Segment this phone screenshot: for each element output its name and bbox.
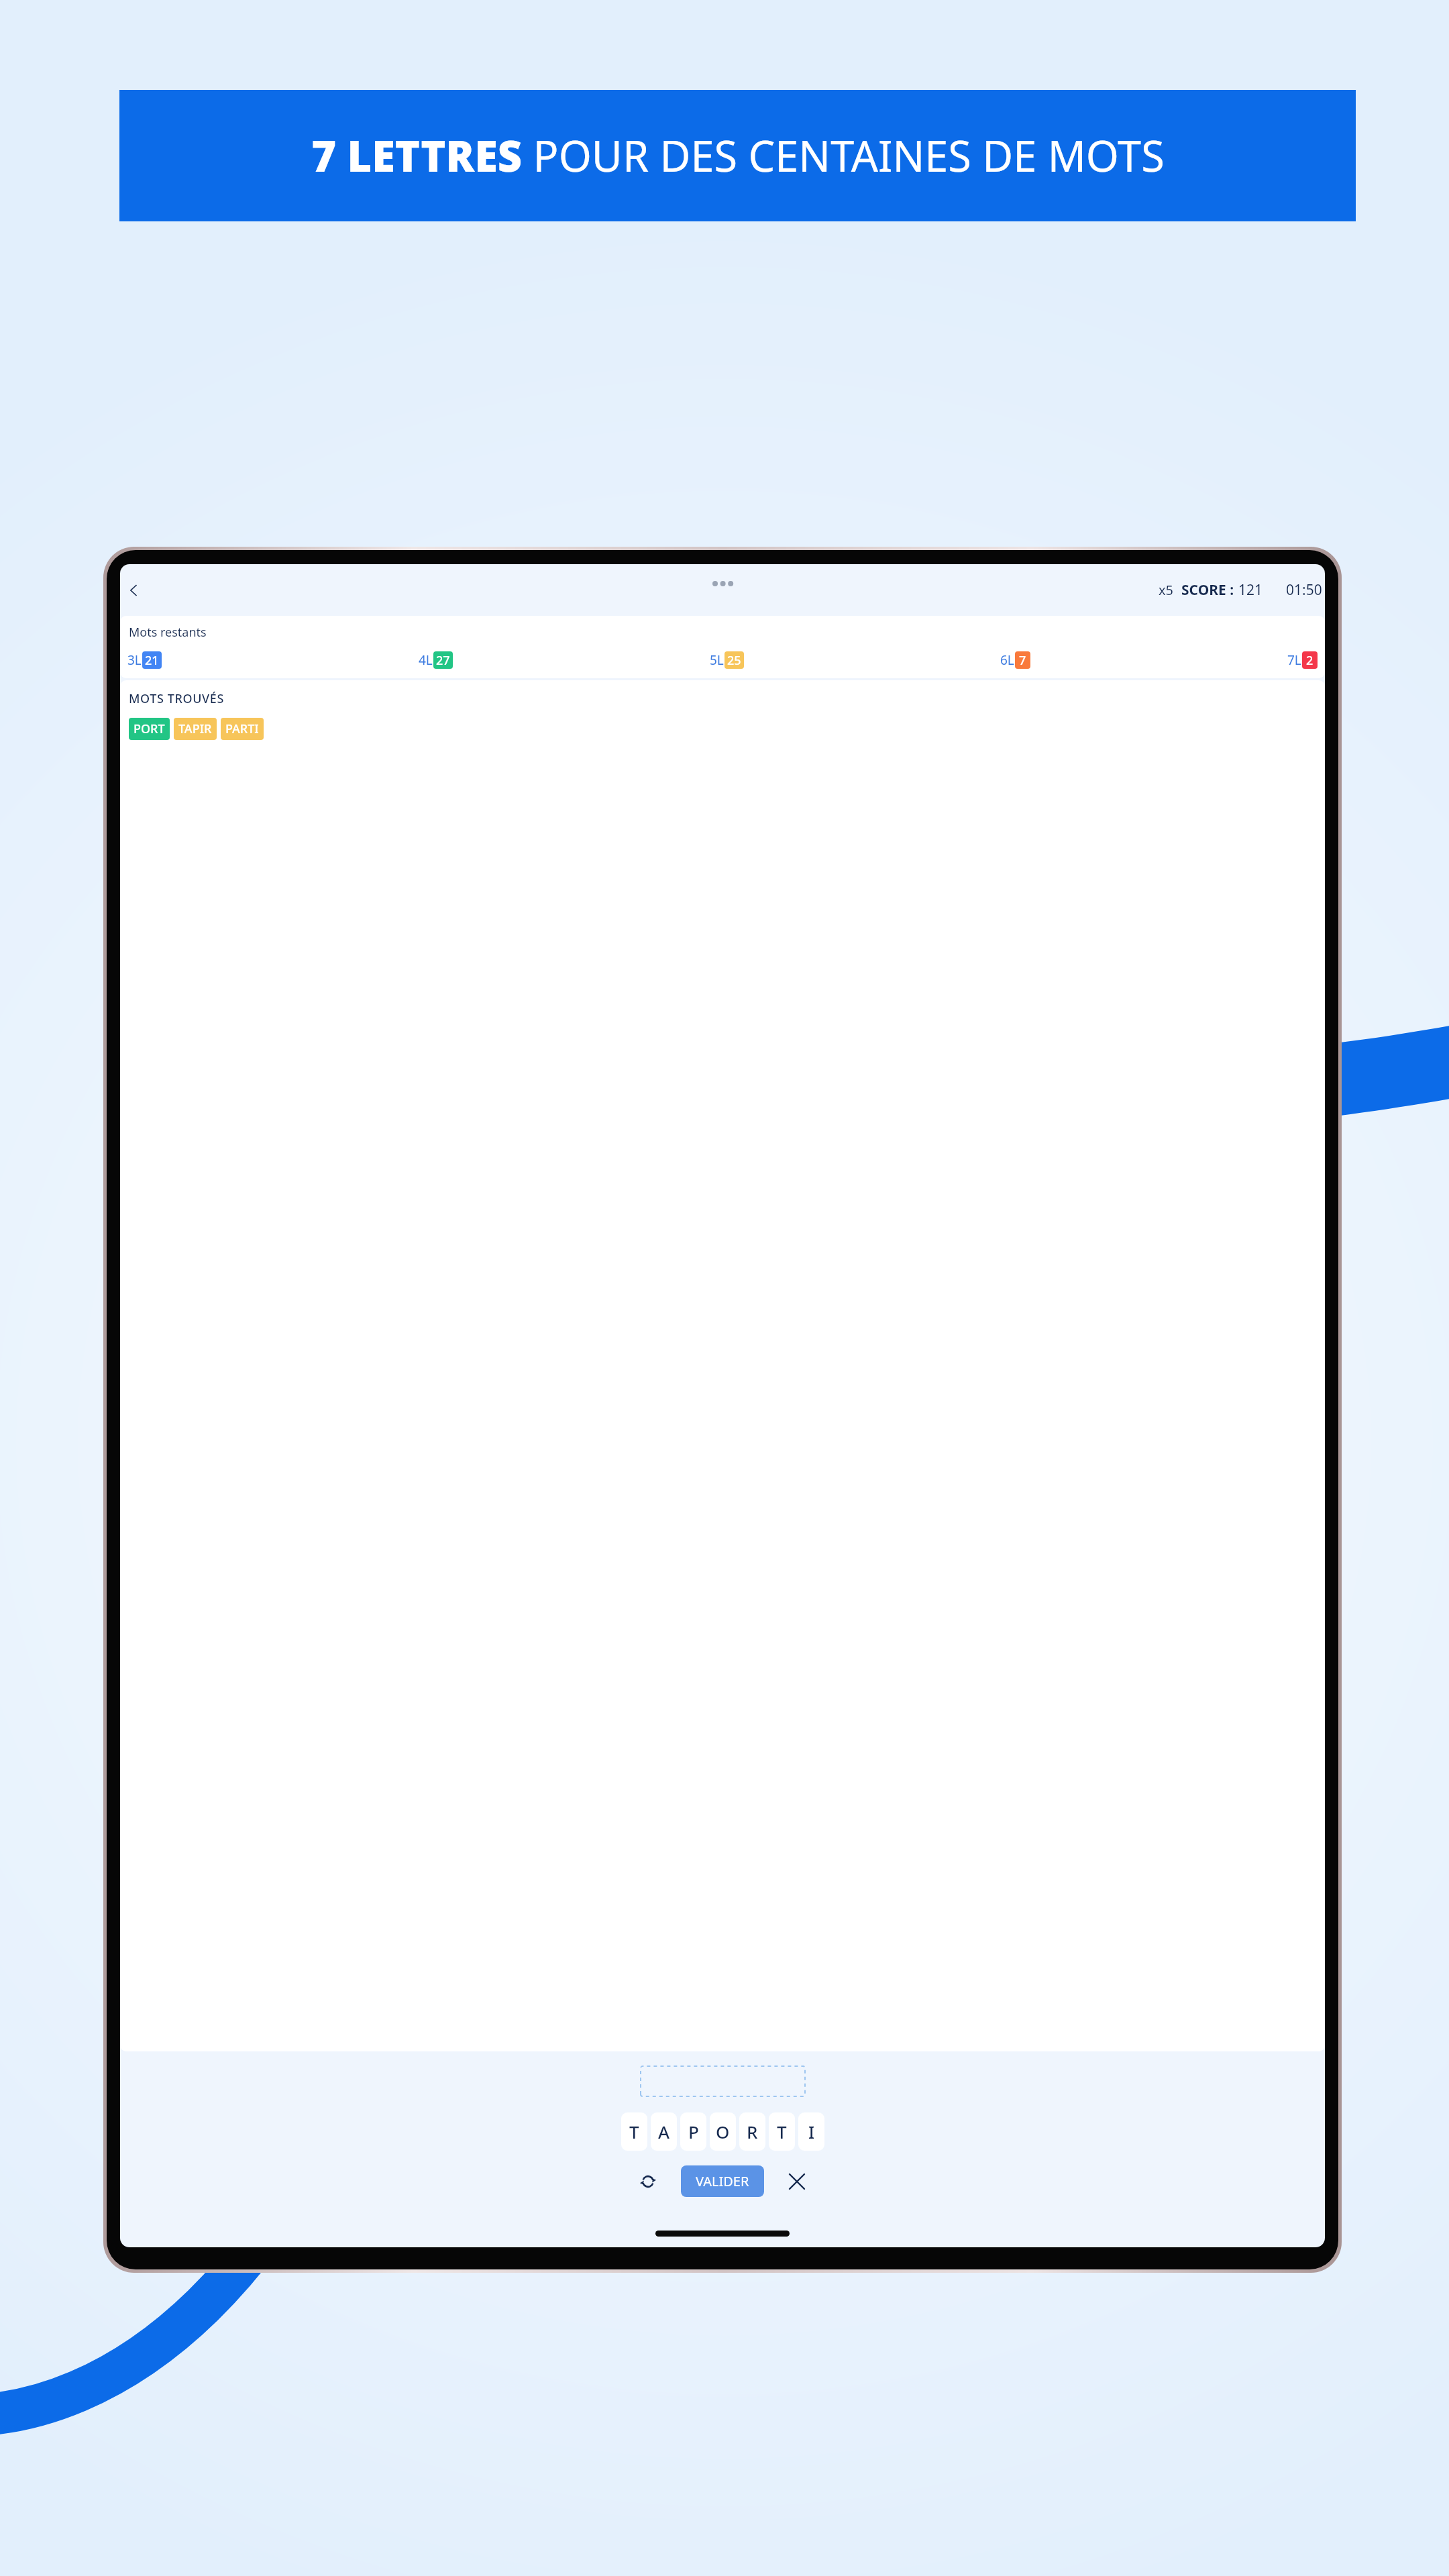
button[interactable]: Back xyxy=(123,579,146,602)
staticText: 5L xyxy=(710,651,724,669)
staticText: SCORE : xyxy=(1181,580,1234,600)
staticText: TAPIR xyxy=(178,720,212,737)
button[interactable]: PARTI xyxy=(221,718,264,740)
staticText: 121 xyxy=(1238,580,1263,600)
staticText: O xyxy=(716,2120,730,2143)
staticText: I xyxy=(808,2120,815,2143)
staticText: 7 LETTRES POUR DES CENTAINES DE MOTS xyxy=(311,127,1165,184)
staticText: 25 xyxy=(727,652,741,669)
staticText: T xyxy=(629,2120,639,2143)
staticText: 6L xyxy=(1000,651,1014,669)
staticText: PARTI xyxy=(225,720,259,737)
staticText: A xyxy=(658,2120,670,2143)
button[interactable]: 3L xyxy=(127,651,162,669)
staticText: T xyxy=(777,2120,787,2143)
button[interactable]: TAPIR xyxy=(174,718,217,740)
button[interactable]: A xyxy=(651,2112,677,2151)
button[interactable]: P xyxy=(680,2112,706,2151)
staticText: 01:50 xyxy=(1286,580,1322,600)
button[interactable]: I xyxy=(798,2112,824,2151)
button[interactable]: T xyxy=(621,2112,647,2151)
staticText: 7L xyxy=(1287,651,1301,669)
staticText: 4L xyxy=(419,651,433,669)
staticText: x5 xyxy=(1159,581,1174,599)
staticText: PORT xyxy=(133,720,165,737)
staticText: 27 xyxy=(436,652,450,669)
staticText: P xyxy=(688,2120,699,2143)
staticText: Mots restants xyxy=(129,624,207,641)
button[interactable]: PORT xyxy=(129,718,170,740)
staticText: VALIDER xyxy=(696,2172,749,2190)
button[interactable]: VALIDER xyxy=(681,2165,764,2197)
staticText: 7 xyxy=(1019,652,1026,669)
button[interactable]: 7L xyxy=(1287,651,1318,669)
staticText: R xyxy=(747,2120,758,2143)
button[interactable]: Shuffle xyxy=(634,2167,662,2196)
button[interactable]: 6L xyxy=(1000,651,1030,669)
button[interactable]: 4L xyxy=(419,651,453,669)
staticText: 3L xyxy=(127,651,142,669)
staticText: 21 xyxy=(145,652,159,669)
staticText: 2 xyxy=(1306,652,1313,669)
button[interactable]: O xyxy=(710,2112,736,2151)
staticText: MOTS TROUVÉS xyxy=(129,690,224,707)
button[interactable]: 5L xyxy=(710,651,744,669)
button[interactable]: T xyxy=(769,2112,795,2151)
button[interactable]: Clear xyxy=(783,2167,811,2196)
button[interactable]: R xyxy=(739,2112,765,2151)
